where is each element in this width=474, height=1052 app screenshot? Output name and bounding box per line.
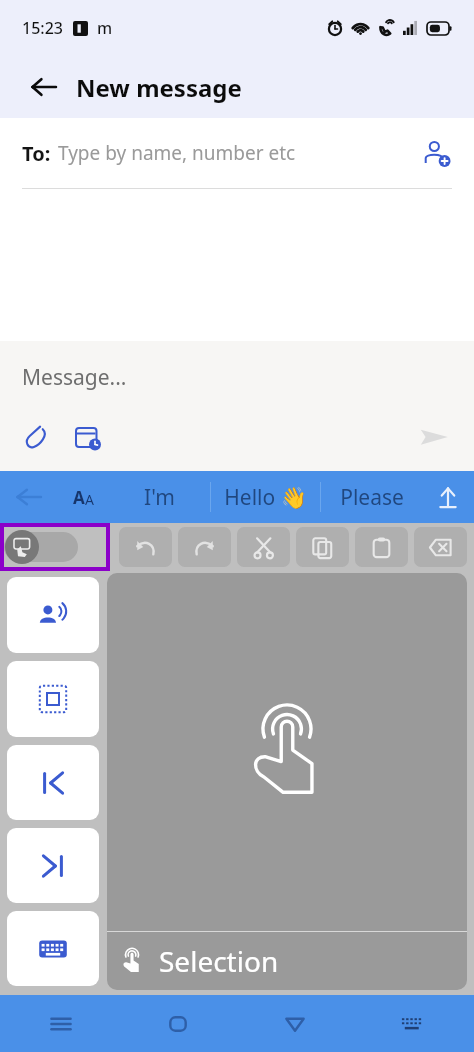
button[interactable]: Please xyxy=(321,471,422,523)
staticText: Selection xyxy=(159,942,279,980)
button[interactable]: Keyboard xyxy=(7,911,99,986)
button[interactable]: Message... xyxy=(22,363,474,392)
button[interactable]: I'm xyxy=(108,471,210,523)
button[interactable]: Touch interaction toggle xyxy=(4,527,106,567)
button[interactable]: Move to start xyxy=(7,745,99,820)
button[interactable]: Back xyxy=(272,1001,318,1047)
staticText: Please xyxy=(340,483,404,512)
button[interactable]: Attach file xyxy=(18,418,56,456)
button[interactable]: Back xyxy=(24,67,64,107)
button[interactable]: Undo xyxy=(119,527,172,567)
button[interactable]: Paste xyxy=(355,527,408,567)
staticText: m xyxy=(97,17,113,39)
button[interactable]: Recent apps xyxy=(38,1001,84,1047)
button[interactable]: Expand xyxy=(422,471,474,523)
button[interactable]: Schedule message xyxy=(68,418,106,456)
staticText: A xyxy=(73,486,85,509)
staticText: Hello 👋 xyxy=(224,483,307,512)
button[interactable]: Select area xyxy=(7,661,99,737)
button[interactable]: Copy xyxy=(296,527,349,567)
button[interactable]: Backspace xyxy=(414,527,467,567)
staticText: To: xyxy=(22,140,51,167)
button[interactable]: Cut xyxy=(237,527,290,567)
staticText: A xyxy=(85,490,94,509)
button[interactable]: Home xyxy=(155,1001,201,1047)
button[interactable]: Move to end xyxy=(7,828,99,903)
staticText: Message... xyxy=(22,363,127,392)
staticText: 15:23 xyxy=(22,17,63,39)
button[interactable]: Back xyxy=(0,471,58,523)
button[interactable]: Talkback xyxy=(7,577,99,653)
staticText: I'm xyxy=(144,483,175,512)
button[interactable]: Text style xyxy=(58,471,108,523)
button[interactable]: Add contact xyxy=(416,133,456,173)
button[interactable]: Type by name, number etc xyxy=(58,140,416,166)
staticText: New message xyxy=(76,71,242,104)
button[interactable]: Hello 👋 xyxy=(211,471,320,523)
button[interactable]: Show keyboard xyxy=(389,1001,435,1047)
staticText: Type by name, number etc xyxy=(58,140,296,166)
button[interactable]: Send xyxy=(412,415,456,459)
button[interactable]: Selection mode xyxy=(107,573,467,990)
button[interactable]: Redo xyxy=(178,527,231,567)
